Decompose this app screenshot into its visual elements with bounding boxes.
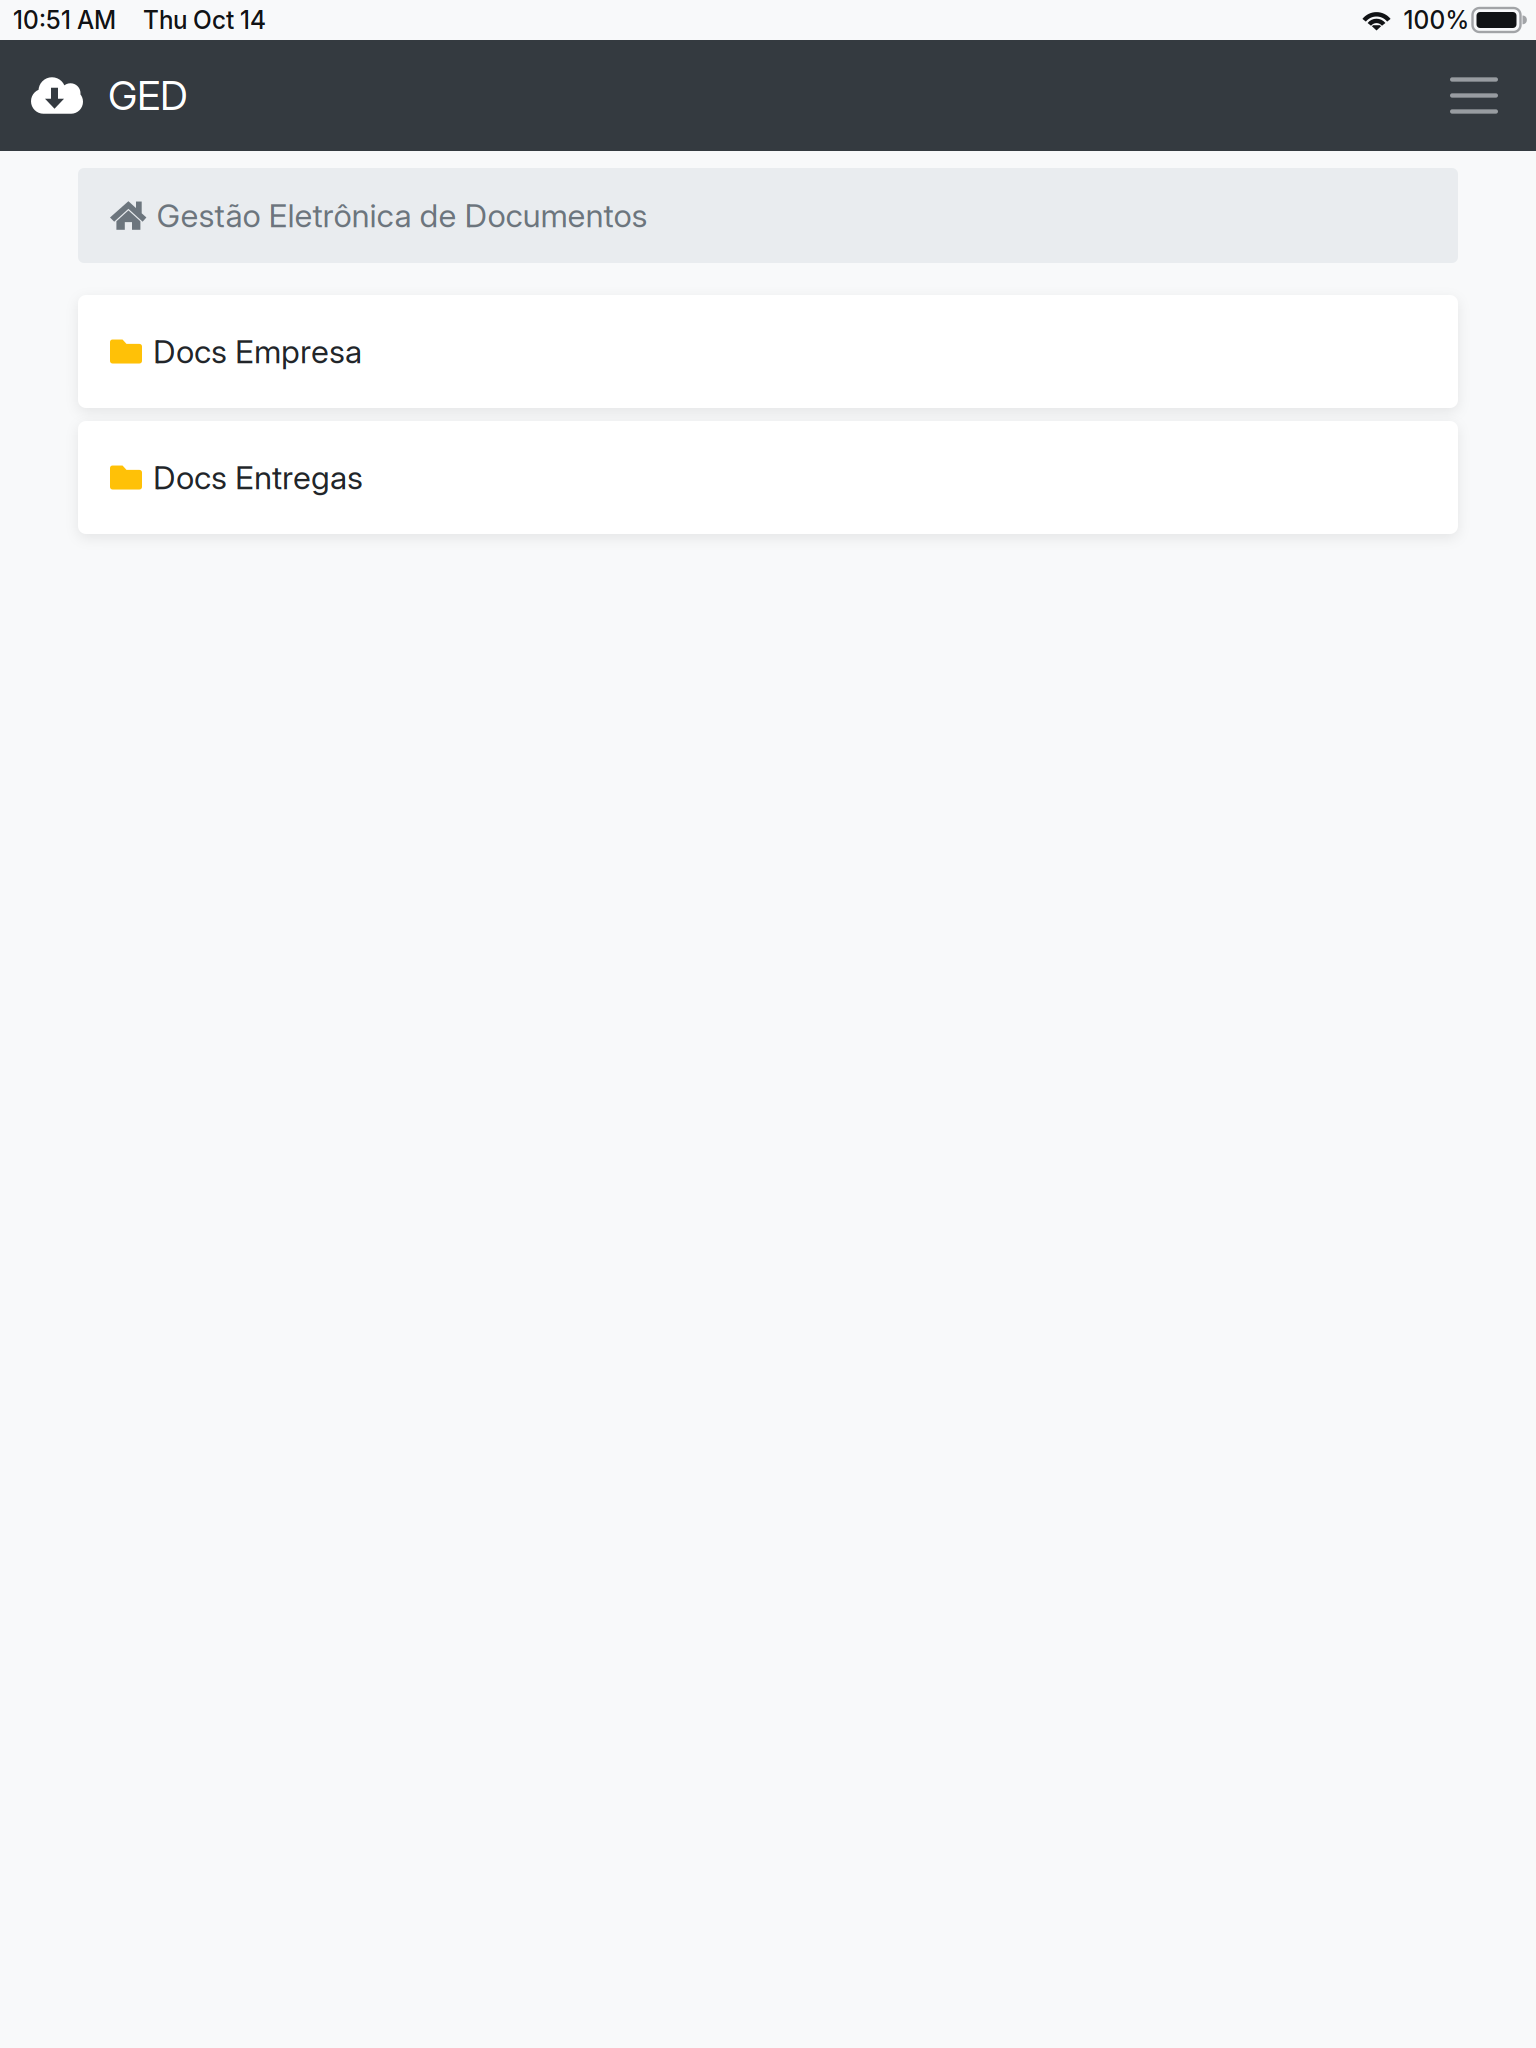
button[interactable]: GED [0,40,202,151]
staticText: GED [108,71,188,120]
button[interactable]: Gestão Eletrônica de Documentos [78,168,1458,263]
button[interactable]: Menu [1422,40,1536,151]
staticText: Gestão Eletrônica de Documentos [156,196,647,235]
button[interactable]: Docs Entregas [78,421,1458,534]
staticText: 10:51 AM [13,5,116,35]
staticText: Docs Empresa [153,332,362,371]
staticText: 100% [1403,5,1469,35]
staticText: Thu Oct 14 [143,5,266,35]
staticText: Docs Entregas [153,458,363,497]
button[interactable]: Docs Empresa [78,295,1458,408]
